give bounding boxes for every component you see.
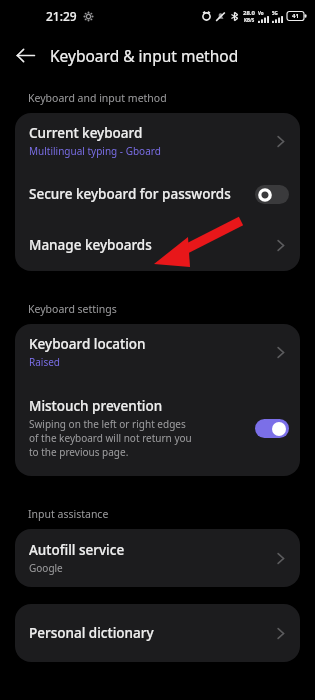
button[interactable]: Back	[7, 37, 43, 73]
staticText: 21:29	[46, 8, 77, 24]
button[interactable]: Personal dictionary	[15, 604, 300, 662]
staticText: Keyboard & input method	[50, 45, 239, 66]
staticText: Secure keyboard for passwords	[29, 185, 231, 203]
staticText: 5G	[272, 10, 278, 16]
staticText: Keyboard location	[29, 335, 146, 353]
staticText: Google	[29, 561, 63, 575]
button[interactable]: Manage keyboards	[15, 219, 300, 271]
staticText: Autofill service	[29, 541, 125, 559]
staticText: Multilingual typing - Gboard	[29, 144, 161, 158]
button[interactable]: Autofill service	[15, 529, 300, 587]
staticText: Vo	[258, 10, 264, 16]
button[interactable]: Secure keyboard off	[255, 185, 289, 204]
button[interactable]: Current keyboard	[15, 113, 300, 169]
button[interactable]: Secure keyboard for passwords	[15, 169, 300, 219]
staticText: Mistouch prevention	[29, 397, 163, 415]
button[interactable]: Keyboard location	[15, 324, 300, 380]
staticText: KB/S	[244, 17, 255, 23]
staticText: Keyboard and input method	[28, 91, 167, 105]
button[interactable]: Mistouch prevention on	[255, 419, 289, 438]
staticText: Input assistance	[28, 507, 109, 521]
button[interactable]: Mistouch prevention	[15, 380, 300, 476]
staticText: Raised	[29, 355, 60, 369]
staticText: Personal dictionary	[29, 624, 154, 642]
staticText: Swiping on the left or right edges of th…	[29, 417, 192, 459]
staticText: Current keyboard	[29, 124, 143, 142]
staticText: Manage keyboards	[29, 236, 152, 254]
staticText: 41	[292, 12, 299, 20]
staticText: 28.0	[243, 9, 255, 17]
staticText: Keyboard settings	[28, 302, 117, 316]
